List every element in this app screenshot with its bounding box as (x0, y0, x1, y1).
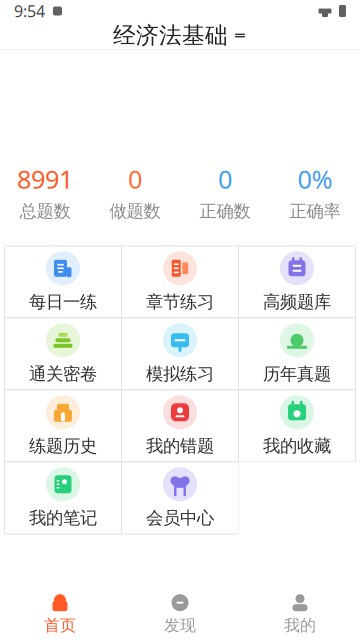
staticText: 历年真题 (263, 363, 331, 385)
staticText: 0% (297, 162, 332, 196)
staticText: 练题历史 (29, 435, 97, 457)
staticText: 总题数 (19, 201, 70, 222)
staticText: 0 (218, 162, 232, 196)
button[interactable]: 首页 (0, 590, 120, 638)
staticText: 做题数 (109, 201, 160, 222)
button[interactable]: 练题历史 (4, 390, 121, 462)
staticText: 我的 (284, 616, 316, 635)
button[interactable]: 章节练习 (121, 246, 238, 318)
button[interactable]: 发现 (120, 590, 240, 638)
staticText: 我的笔记 (29, 507, 97, 529)
button[interactable]: 我的错题 (121, 390, 238, 462)
staticText: 我的收藏 (263, 435, 331, 457)
button[interactable]: 每日一练 (4, 246, 121, 318)
staticText: 首页 (44, 616, 76, 635)
staticText: 正确数 (199, 201, 250, 222)
button[interactable]: 我的收藏 (238, 390, 355, 462)
staticText: 章节练习 (146, 291, 214, 313)
staticText: 8991 (17, 162, 73, 196)
staticText: 发现 (164, 616, 196, 635)
staticText: 9:54 (14, 0, 45, 22)
button[interactable]: 我的 (240, 590, 360, 638)
staticText: 每日一练 (29, 291, 97, 313)
staticText: 高频题库 (263, 291, 331, 313)
staticText: 模拟练习 (146, 363, 214, 385)
button[interactable]: 会员中心 (121, 462, 238, 534)
button[interactable]: 模拟练习 (121, 318, 238, 390)
staticText: 0 (128, 162, 142, 196)
staticText: 我的错题 (146, 435, 214, 457)
staticText: 通关密卷 (29, 363, 97, 385)
staticText: 会员中心 (146, 507, 214, 529)
button[interactable]: 高频题库 (238, 246, 355, 318)
staticText: 经济法基础 (113, 22, 228, 49)
staticText: 正确率 (289, 201, 340, 222)
button[interactable]: 切换科目 (233, 28, 247, 42)
button[interactable]: 通关密卷 (4, 318, 121, 390)
button[interactable]: 我的笔记 (4, 462, 121, 534)
button[interactable]: 历年真题 (238, 318, 355, 390)
